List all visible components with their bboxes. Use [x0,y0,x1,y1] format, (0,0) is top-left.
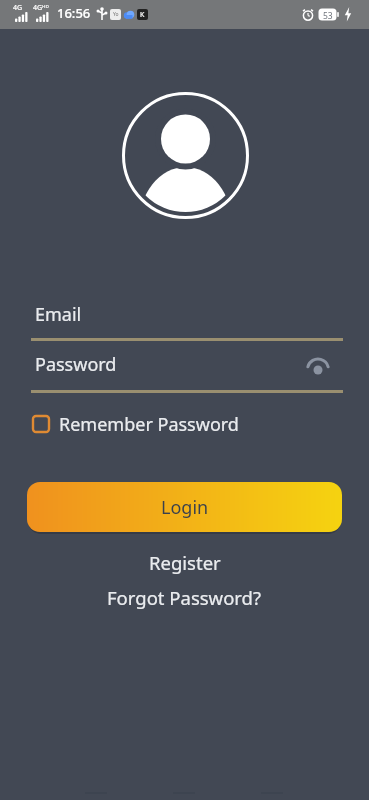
staticText: 16:56 [57,4,91,22]
button[interactable]: Forgot Password? [99,585,270,610]
staticText: Register [149,550,221,575]
button[interactable]: Email [27,300,342,340]
button[interactable]: Register [141,550,229,575]
staticText: Login [161,495,209,520]
staticText: 4Gᴴᴰ [33,3,49,13]
staticText: Email [35,302,82,327]
staticText: Forgot Password? [107,585,262,610]
button[interactable] [306,357,330,377]
button[interactable]: Password [27,350,342,390]
button[interactable]: Login [27,482,342,532]
staticText: Remember Password [59,412,239,437]
staticText: 53 [323,10,333,22]
staticText: Yo [113,11,119,18]
staticText: K [140,10,145,20]
button[interactable]: Remember Password [32,409,239,439]
staticText: Password [35,352,117,377]
staticText: 4G [13,3,23,13]
